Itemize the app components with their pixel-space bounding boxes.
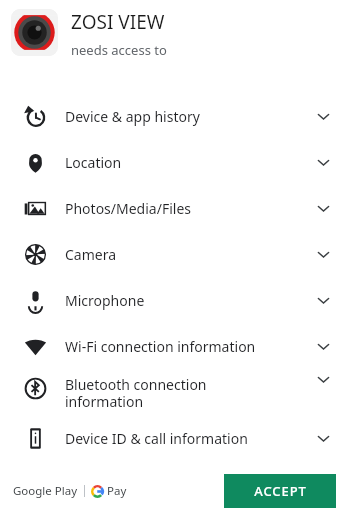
staticText: Device & app history — [65, 107, 200, 126]
button[interactable]: Camera — [0, 231, 350, 277]
button[interactable]: Photos/Media/Files — [0, 185, 350, 231]
staticText: Google Play — [13, 483, 78, 499]
staticText: Location — [65, 153, 122, 172]
staticText: Microphone — [65, 291, 145, 310]
staticText: ZOSI VIEW — [71, 9, 165, 35]
button[interactable]: Wi-Fi connection information — [0, 323, 350, 369]
staticText: Camera — [65, 245, 117, 264]
button[interactable]: Bluetooth connection information — [0, 369, 350, 415]
button[interactable]: Location — [0, 139, 350, 185]
staticText: needs access to — [71, 41, 167, 59]
button[interactable]: Microphone — [0, 277, 350, 323]
staticText: Wi-Fi connection information — [65, 337, 256, 356]
staticText: Photos/Media/Files — [65, 199, 191, 218]
staticText: ACCEPT — [254, 482, 307, 500]
button[interactable]: ACCEPT — [224, 474, 336, 508]
staticText: Pay — [107, 483, 127, 499]
staticText: Device ID & call information — [65, 429, 248, 448]
button[interactable]: Device & app history — [0, 93, 350, 139]
staticText: Bluetooth connection information — [65, 375, 207, 411]
button[interactable]: Device ID & call information — [0, 415, 350, 461]
